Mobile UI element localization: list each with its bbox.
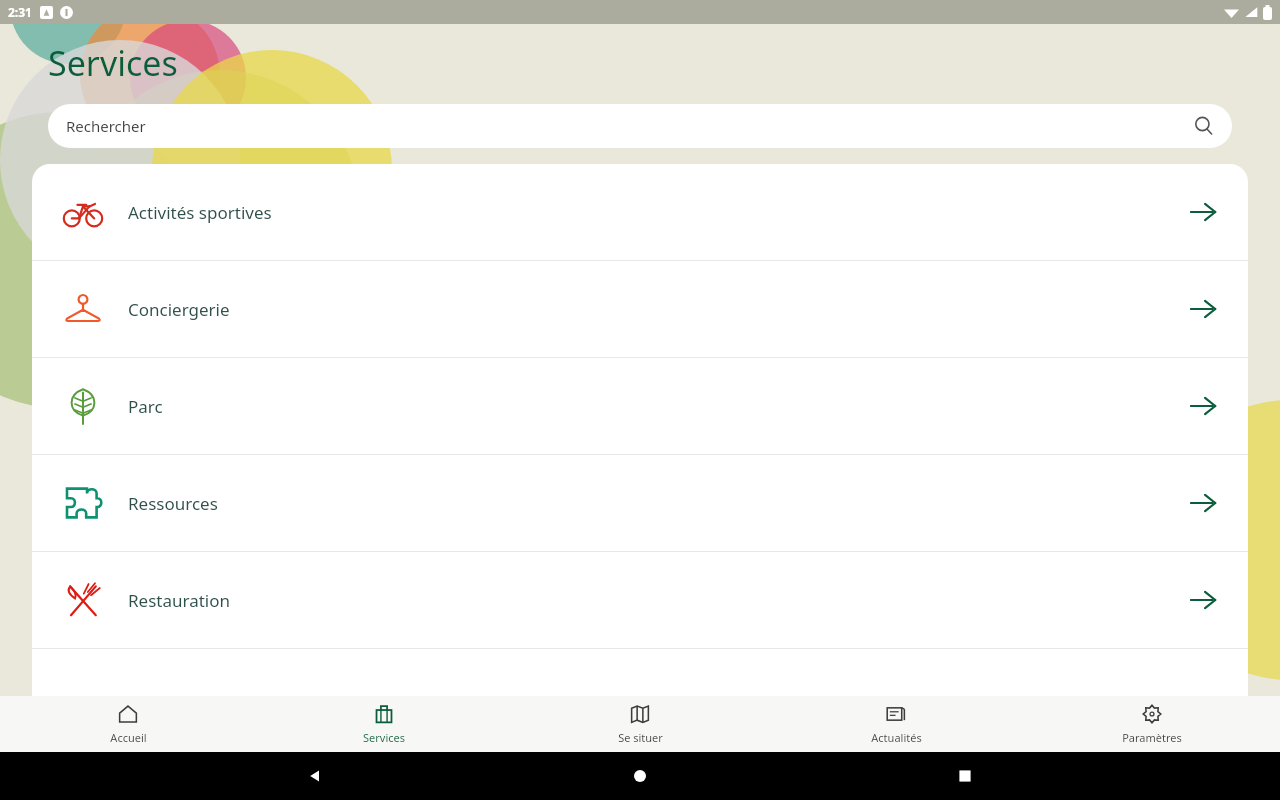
button[interactable]: Actualités (768, 696, 1024, 752)
staticText: Restauration (128, 589, 231, 612)
staticText: Rechercher (66, 116, 146, 136)
staticText: Services (48, 40, 178, 86)
button[interactable]: Se situer (512, 696, 768, 752)
button[interactable]: Parc (32, 358, 1248, 454)
staticText: Accueil (110, 730, 147, 745)
staticText: Services (363, 730, 405, 745)
button[interactable]: Activités sportives (32, 164, 1248, 260)
staticText: Actualités (871, 730, 922, 745)
button[interactable]: Ressources (32, 455, 1248, 551)
staticText: Conciergerie (128, 298, 230, 321)
staticText: Se situer (618, 730, 663, 745)
staticText: Paramètres (1122, 730, 1182, 745)
staticText: Ressources (128, 492, 218, 515)
button[interactable]: Rechercher (48, 104, 1232, 148)
button[interactable]: Accueil (0, 696, 256, 752)
staticText: Activités sportives (128, 201, 272, 224)
staticText: 2:31 (8, 4, 32, 20)
other: Rechercher (1194, 116, 1214, 136)
button[interactable]: Conciergerie (32, 261, 1248, 357)
button[interactable]: Services (256, 696, 512, 752)
button[interactable]: Paramètres (1024, 696, 1280, 752)
button[interactable]: Restauration (32, 552, 1248, 648)
staticText: Parc (128, 395, 163, 418)
